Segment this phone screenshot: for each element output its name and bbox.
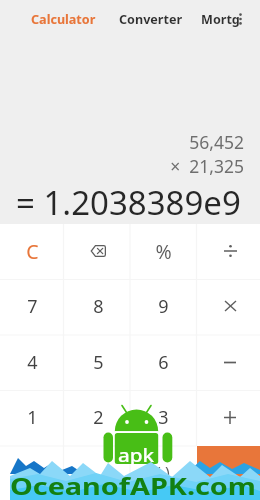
staticText: . bbox=[96, 461, 101, 486]
staticText: 5 bbox=[93, 350, 104, 375]
button[interactable]: = bbox=[197, 446, 260, 500]
button[interactable]: Backspace bbox=[65, 223, 131, 279]
staticText: 56,452 bbox=[0, 130, 244, 154]
staticText: 2 bbox=[93, 405, 104, 430]
staticText: OceanofAPK.com bbox=[10, 469, 256, 500]
staticText: Mortg bbox=[201, 11, 240, 28]
staticText: 3 bbox=[158, 405, 169, 430]
button[interactable]: 8 bbox=[65, 278, 131, 334]
staticText: 4 bbox=[27, 350, 38, 375]
button[interactable]: 9 bbox=[130, 278, 196, 334]
staticText: Converter bbox=[119, 11, 183, 28]
button[interactable]: 1 bbox=[0, 389, 65, 445]
button[interactable]: Calculator bbox=[25, 7, 102, 32]
staticText: × 21,325 bbox=[0, 154, 244, 178]
button[interactable]: . bbox=[65, 445, 131, 500]
staticText: C bbox=[26, 238, 39, 265]
button[interactable]: Divide bbox=[197, 223, 260, 279]
button[interactable]: Clear bbox=[0, 223, 65, 279]
staticText: 6 bbox=[158, 350, 169, 375]
staticText: apk bbox=[118, 443, 155, 467]
staticText: 8 bbox=[93, 294, 104, 319]
button[interactable]: Mortg bbox=[195, 7, 246, 32]
staticText: 1 bbox=[27, 405, 38, 430]
staticText: Calculator bbox=[31, 11, 96, 28]
button[interactable]: 2 bbox=[65, 389, 131, 445]
button[interactable]: Plus bbox=[197, 389, 260, 445]
button[interactable]: 6 bbox=[130, 334, 196, 390]
button[interactable]: Percent bbox=[130, 223, 196, 279]
staticText: 9 bbox=[158, 294, 169, 319]
staticText: 7 bbox=[27, 294, 38, 319]
button[interactable]: 3 bbox=[130, 389, 196, 445]
button[interactable]: Converter bbox=[113, 7, 189, 32]
button[interactable]: 4 bbox=[0, 334, 65, 390]
button[interactable]: 5 bbox=[65, 334, 131, 390]
button[interactable]: Multiply bbox=[197, 278, 260, 334]
button[interactable]: Minus bbox=[197, 334, 260, 390]
button[interactable]: 0 bbox=[0, 445, 65, 500]
staticText: = bbox=[223, 459, 236, 488]
button[interactable]: More options bbox=[232, 6, 248, 32]
staticText: 0 bbox=[27, 461, 38, 486]
button[interactable]: 7 bbox=[0, 278, 65, 334]
button[interactable]: ( ) bbox=[130, 445, 196, 500]
staticText: ( ) bbox=[156, 462, 170, 484]
staticText: = 1.2038389e9 bbox=[16, 180, 241, 225]
staticText: % bbox=[155, 238, 172, 265]
